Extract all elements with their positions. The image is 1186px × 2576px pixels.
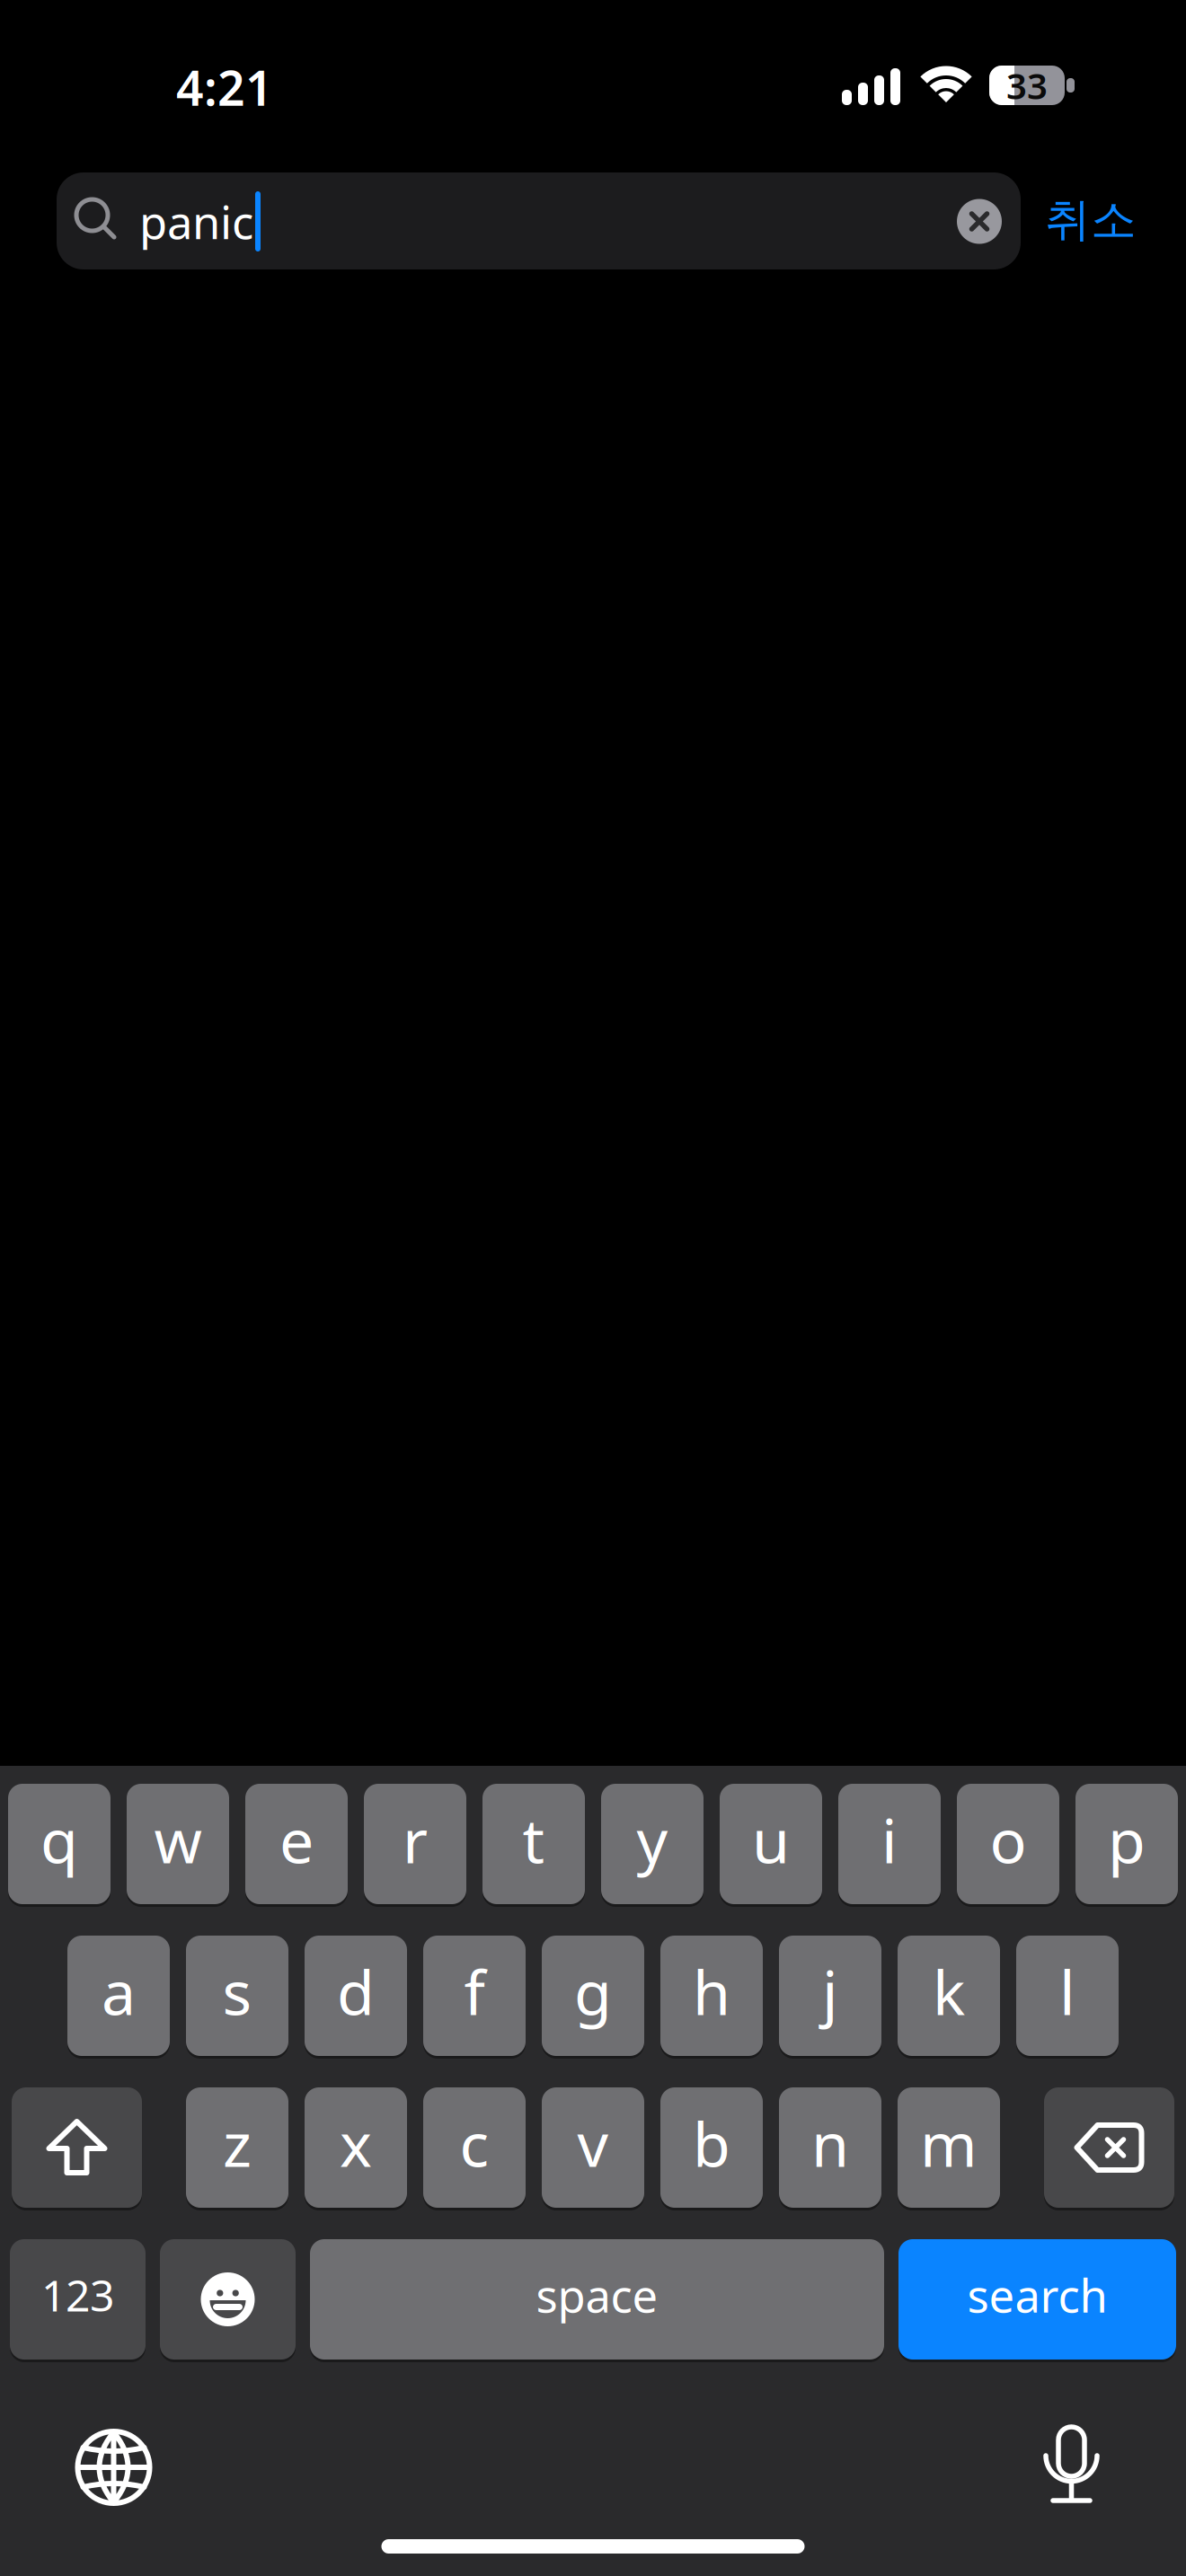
- button[interactable]: n: [779, 2087, 881, 2208]
- button[interactable]: Delete: [1044, 2087, 1174, 2208]
- button[interactable]: w: [127, 1784, 229, 1904]
- staticText: s: [222, 1951, 252, 2032]
- button[interactable]: x: [305, 2087, 407, 2208]
- button[interactable]: z: [186, 2087, 288, 2208]
- staticText: h: [693, 1951, 730, 2032]
- staticText: e: [279, 1799, 314, 1880]
- staticText: search: [967, 2265, 1107, 2325]
- staticText: l: [1059, 1951, 1075, 2032]
- staticText: y: [637, 1799, 668, 1880]
- staticText: c: [460, 2102, 489, 2184]
- button[interactable]: y: [601, 1784, 704, 1904]
- button[interactable]: o: [957, 1784, 1059, 1904]
- button[interactable]: space: [310, 2239, 884, 2360]
- button[interactable]: p: [1075, 1784, 1178, 1904]
- button[interactable]: t: [482, 1784, 585, 1904]
- staticText: d: [337, 1951, 375, 2032]
- staticText: i: [881, 1799, 898, 1880]
- staticText: z: [223, 2102, 252, 2184]
- staticText: x: [340, 2102, 372, 2184]
- staticText: 33: [1006, 61, 1048, 109]
- button[interactable]: v: [542, 2087, 644, 2208]
- staticText: a: [102, 1951, 136, 2032]
- staticText: 123: [41, 2266, 114, 2323]
- staticText: g: [574, 1951, 612, 2032]
- staticText: 취소: [1045, 192, 1137, 248]
- button[interactable]: Clear text: [957, 199, 1002, 244]
- button[interactable]: Next keyboard: [74, 2428, 153, 2507]
- button[interactable]: k: [898, 1936, 1000, 2056]
- staticText: j: [822, 1951, 838, 2032]
- staticText: n: [811, 2102, 849, 2184]
- button[interactable]: m: [898, 2087, 1000, 2208]
- button[interactable]: Dictation: [1043, 2423, 1100, 2506]
- staticText: f: [464, 1951, 485, 2032]
- staticText: space: [536, 2265, 658, 2325]
- button[interactable]: b: [660, 2087, 763, 2208]
- button[interactable]: 취소: [1045, 192, 1137, 248]
- button[interactable]: Emoji: [160, 2239, 296, 2360]
- button[interactable]: e: [245, 1784, 348, 1904]
- staticText: q: [40, 1799, 78, 1880]
- staticText: m: [920, 2102, 978, 2184]
- button[interactable]: l: [1016, 1936, 1119, 2056]
- button[interactable]: s: [186, 1936, 288, 2056]
- button[interactable]: a: [67, 1936, 170, 2056]
- button[interactable]: 123: [10, 2239, 146, 2360]
- button[interactable]: j: [779, 1936, 881, 2056]
- button[interactable]: u: [720, 1784, 822, 1904]
- staticText: r: [403, 1799, 428, 1880]
- button[interactable]: g: [542, 1936, 644, 2056]
- button[interactable]: h: [660, 1936, 763, 2056]
- staticText: v: [577, 2102, 609, 2184]
- button[interactable]: search: [898, 2239, 1176, 2360]
- button[interactable]: i: [838, 1784, 941, 1904]
- button[interactable]: d: [305, 1936, 407, 2056]
- staticText: t: [522, 1799, 545, 1880]
- button[interactable]: Shift: [12, 2087, 142, 2208]
- staticText: b: [693, 2102, 730, 2184]
- staticText: w: [154, 1799, 202, 1880]
- staticText: u: [752, 1799, 790, 1880]
- button[interactable]: f: [423, 1936, 526, 2056]
- staticText: o: [990, 1799, 1027, 1880]
- button[interactable]: c: [423, 2087, 526, 2208]
- button[interactable]: q: [8, 1784, 111, 1904]
- staticText: p: [1108, 1799, 1146, 1880]
- button[interactable]: r: [364, 1784, 466, 1904]
- staticText: panic: [139, 191, 253, 252]
- staticText: 4:21: [176, 55, 273, 119]
- staticText: k: [933, 1951, 965, 2032]
